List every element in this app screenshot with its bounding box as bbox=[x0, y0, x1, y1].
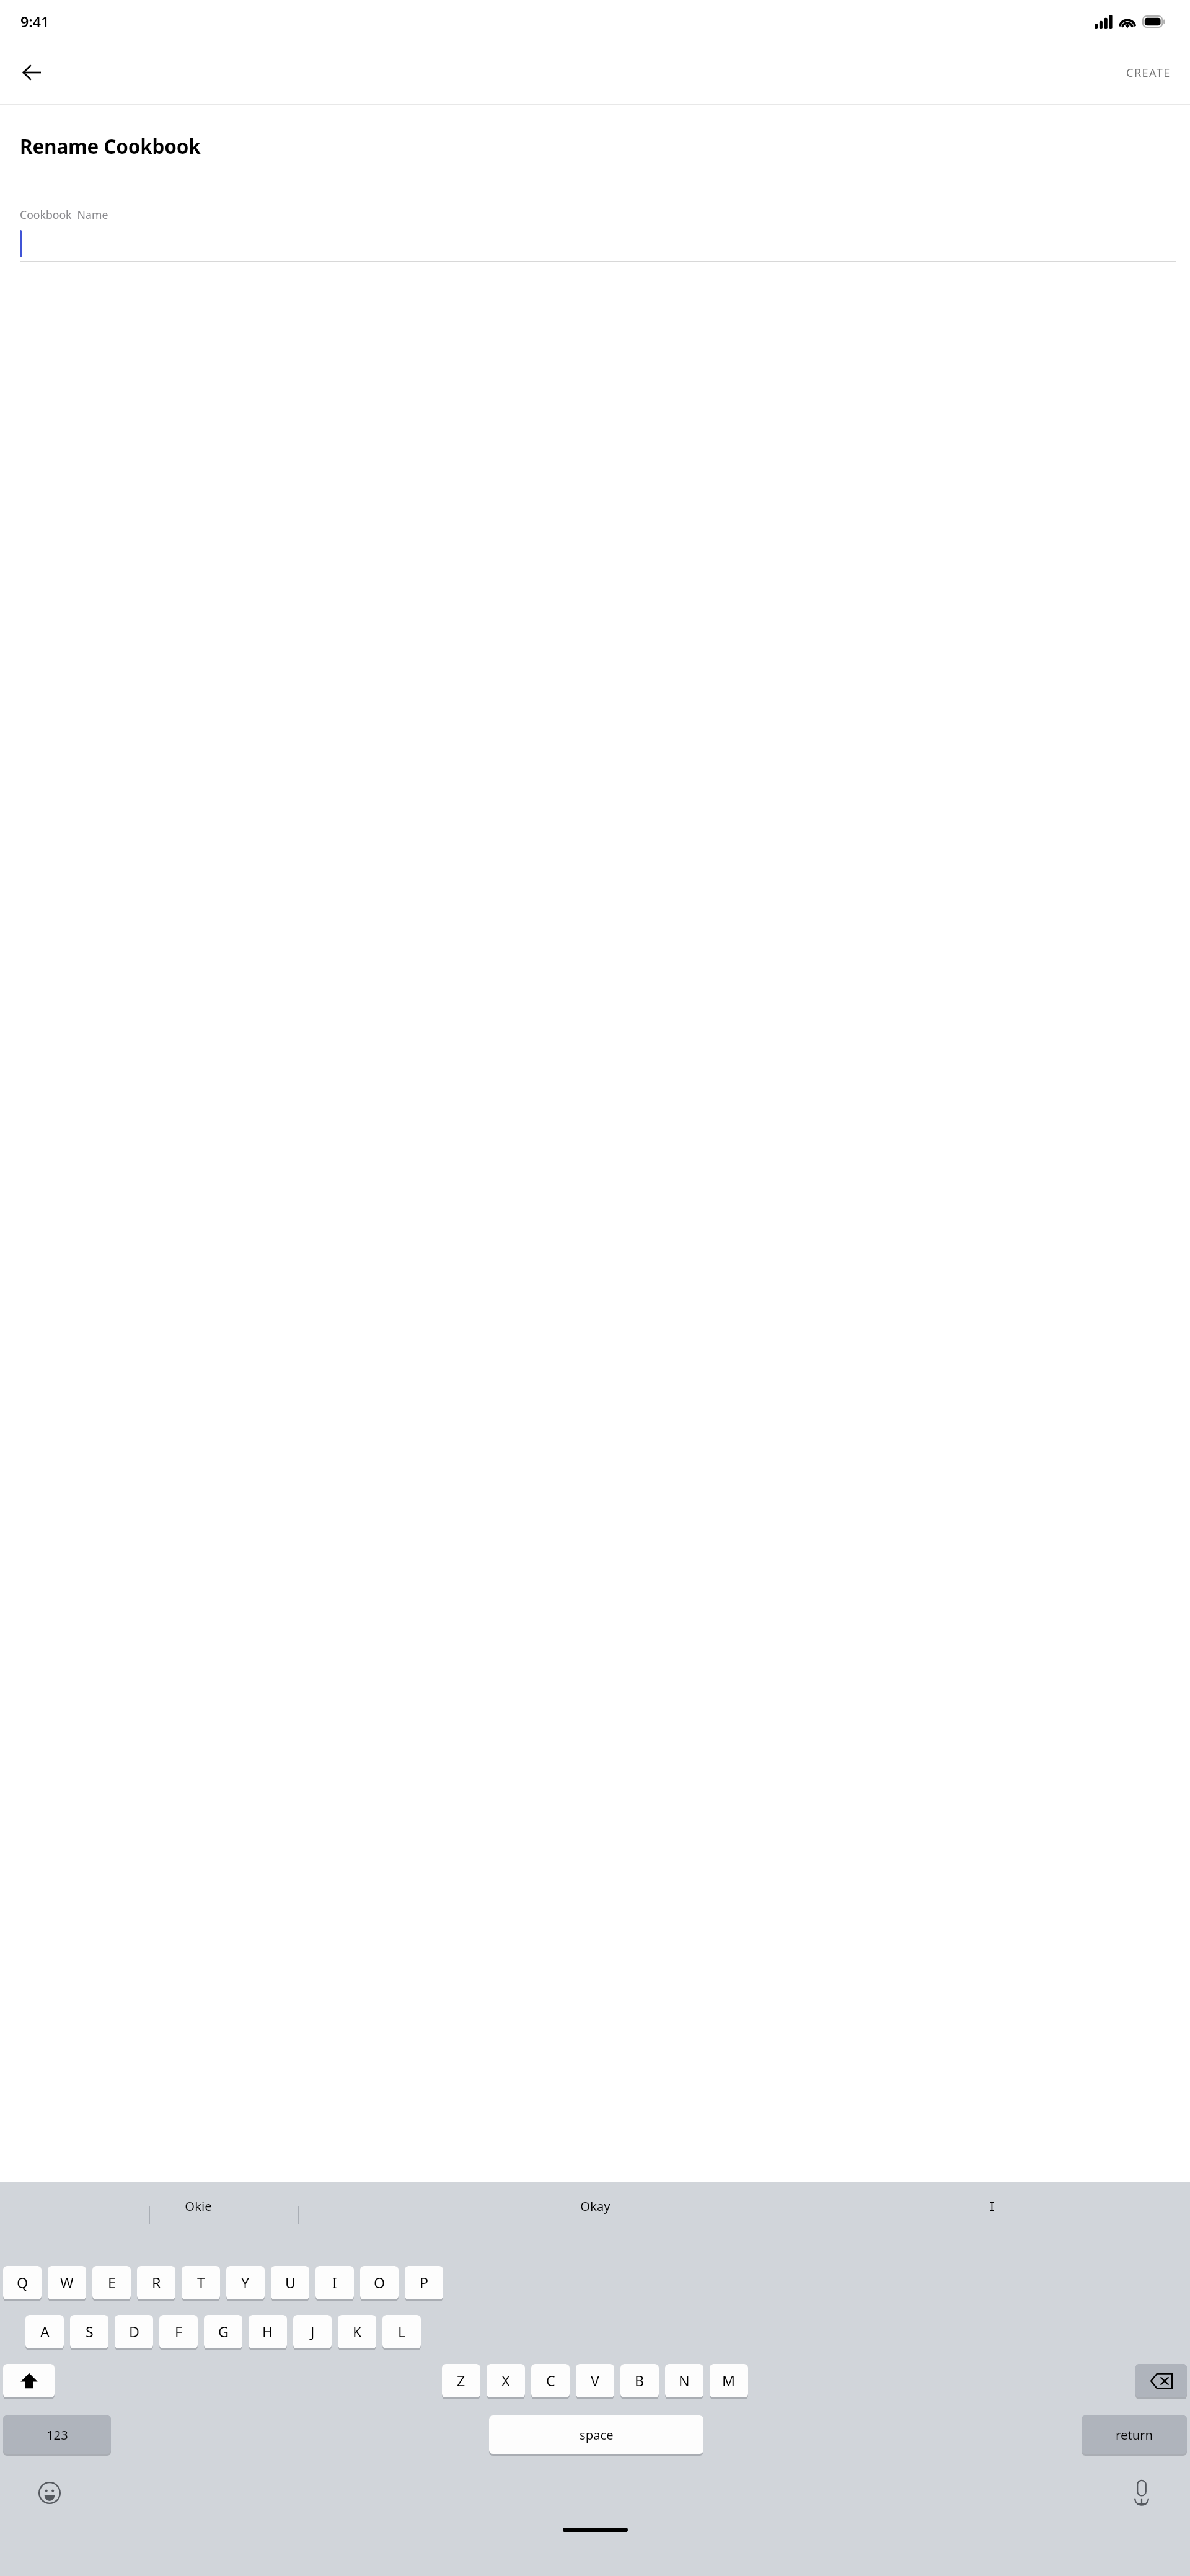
button[interactable]: K bbox=[338, 2315, 376, 2350]
staticText: N bbox=[679, 2371, 690, 2391]
button[interactable]: CREATE bbox=[1107, 56, 1190, 90]
staticText: W bbox=[60, 2273, 74, 2293]
staticText: 123 bbox=[46, 2426, 68, 2443]
button[interactable]: J bbox=[293, 2315, 332, 2350]
staticText: G bbox=[218, 2322, 229, 2342]
button[interactable]: F bbox=[159, 2315, 198, 2350]
staticText: S bbox=[86, 2322, 94, 2342]
staticText: P bbox=[420, 2273, 429, 2293]
button[interactable]: H bbox=[249, 2315, 287, 2350]
staticText: E bbox=[108, 2273, 116, 2293]
button[interactable]: I bbox=[315, 2266, 354, 2301]
button[interactable]: W bbox=[48, 2266, 86, 2301]
button[interactable]: L bbox=[382, 2315, 421, 2350]
button[interactable]: R bbox=[137, 2266, 175, 2301]
staticText: C bbox=[546, 2371, 555, 2391]
button[interactable]: U bbox=[271, 2266, 309, 2301]
button[interactable]: N bbox=[665, 2364, 703, 2399]
staticText: K bbox=[353, 2322, 362, 2342]
staticText: CREATE bbox=[1126, 65, 1171, 81]
button[interactable]: Y bbox=[226, 2266, 265, 2301]
staticText: T bbox=[197, 2273, 205, 2293]
staticText: Q bbox=[17, 2273, 29, 2293]
button[interactable]: Q bbox=[3, 2266, 42, 2301]
button[interactable]: space bbox=[489, 2415, 703, 2456]
button[interactable]: E bbox=[92, 2266, 131, 2301]
button[interactable]: Okay bbox=[397, 2182, 793, 2229]
staticText: Okay bbox=[580, 2197, 610, 2215]
button[interactable]: Shift bbox=[3, 2364, 55, 2399]
button[interactable]: B bbox=[620, 2364, 659, 2399]
staticText: O bbox=[374, 2273, 386, 2293]
button[interactable]: G bbox=[204, 2315, 242, 2350]
button[interactable]: Z bbox=[442, 2364, 480, 2399]
staticText: V bbox=[591, 2371, 599, 2391]
staticText: 9:41 bbox=[20, 12, 50, 32]
button[interactable]: D bbox=[115, 2315, 153, 2350]
button[interactable]: O bbox=[360, 2266, 399, 2301]
button[interactable]: M bbox=[710, 2364, 748, 2399]
button[interactable]: Back bbox=[12, 53, 51, 92]
staticText: J bbox=[311, 2322, 315, 2342]
button[interactable]: 123 bbox=[3, 2415, 111, 2456]
staticText: R bbox=[152, 2273, 161, 2293]
staticText: B bbox=[635, 2371, 645, 2391]
staticText: Rename Cookbook bbox=[20, 133, 201, 159]
button[interactable]: C bbox=[531, 2364, 570, 2399]
button[interactable]: T bbox=[182, 2266, 220, 2301]
staticText: L bbox=[398, 2322, 406, 2342]
button[interactable]: return bbox=[1082, 2415, 1187, 2456]
staticText: U bbox=[285, 2273, 296, 2293]
staticText: return bbox=[1116, 2426, 1153, 2443]
staticText: Cookbook Name bbox=[20, 207, 108, 222]
staticText: F bbox=[175, 2322, 183, 2342]
staticText: X bbox=[501, 2371, 510, 2391]
staticText: space bbox=[580, 2426, 614, 2443]
button[interactable]: P bbox=[405, 2266, 443, 2301]
staticText: I bbox=[332, 2273, 337, 2293]
button[interactable] bbox=[20, 222, 1176, 262]
button[interactable]: Backspace bbox=[1135, 2364, 1187, 2399]
button[interactable]: I bbox=[793, 2182, 1190, 2229]
button[interactable]: X bbox=[487, 2364, 525, 2399]
button[interactable]: Okie bbox=[0, 2182, 397, 2229]
staticText: Z bbox=[457, 2371, 465, 2391]
staticText: I bbox=[990, 2197, 994, 2215]
button[interactable]: V bbox=[576, 2364, 614, 2399]
staticText: H bbox=[262, 2322, 273, 2342]
staticText: D bbox=[129, 2322, 139, 2342]
button[interactable]: A bbox=[25, 2315, 64, 2350]
button[interactable]: S bbox=[70, 2315, 108, 2350]
staticText: M bbox=[722, 2371, 736, 2391]
button[interactable]: Emoji bbox=[33, 2476, 66, 2509]
staticText: Y bbox=[241, 2273, 250, 2293]
button[interactable]: Dictation bbox=[1125, 2476, 1158, 2509]
staticText: Okie bbox=[185, 2197, 212, 2215]
staticText: A bbox=[40, 2322, 50, 2342]
